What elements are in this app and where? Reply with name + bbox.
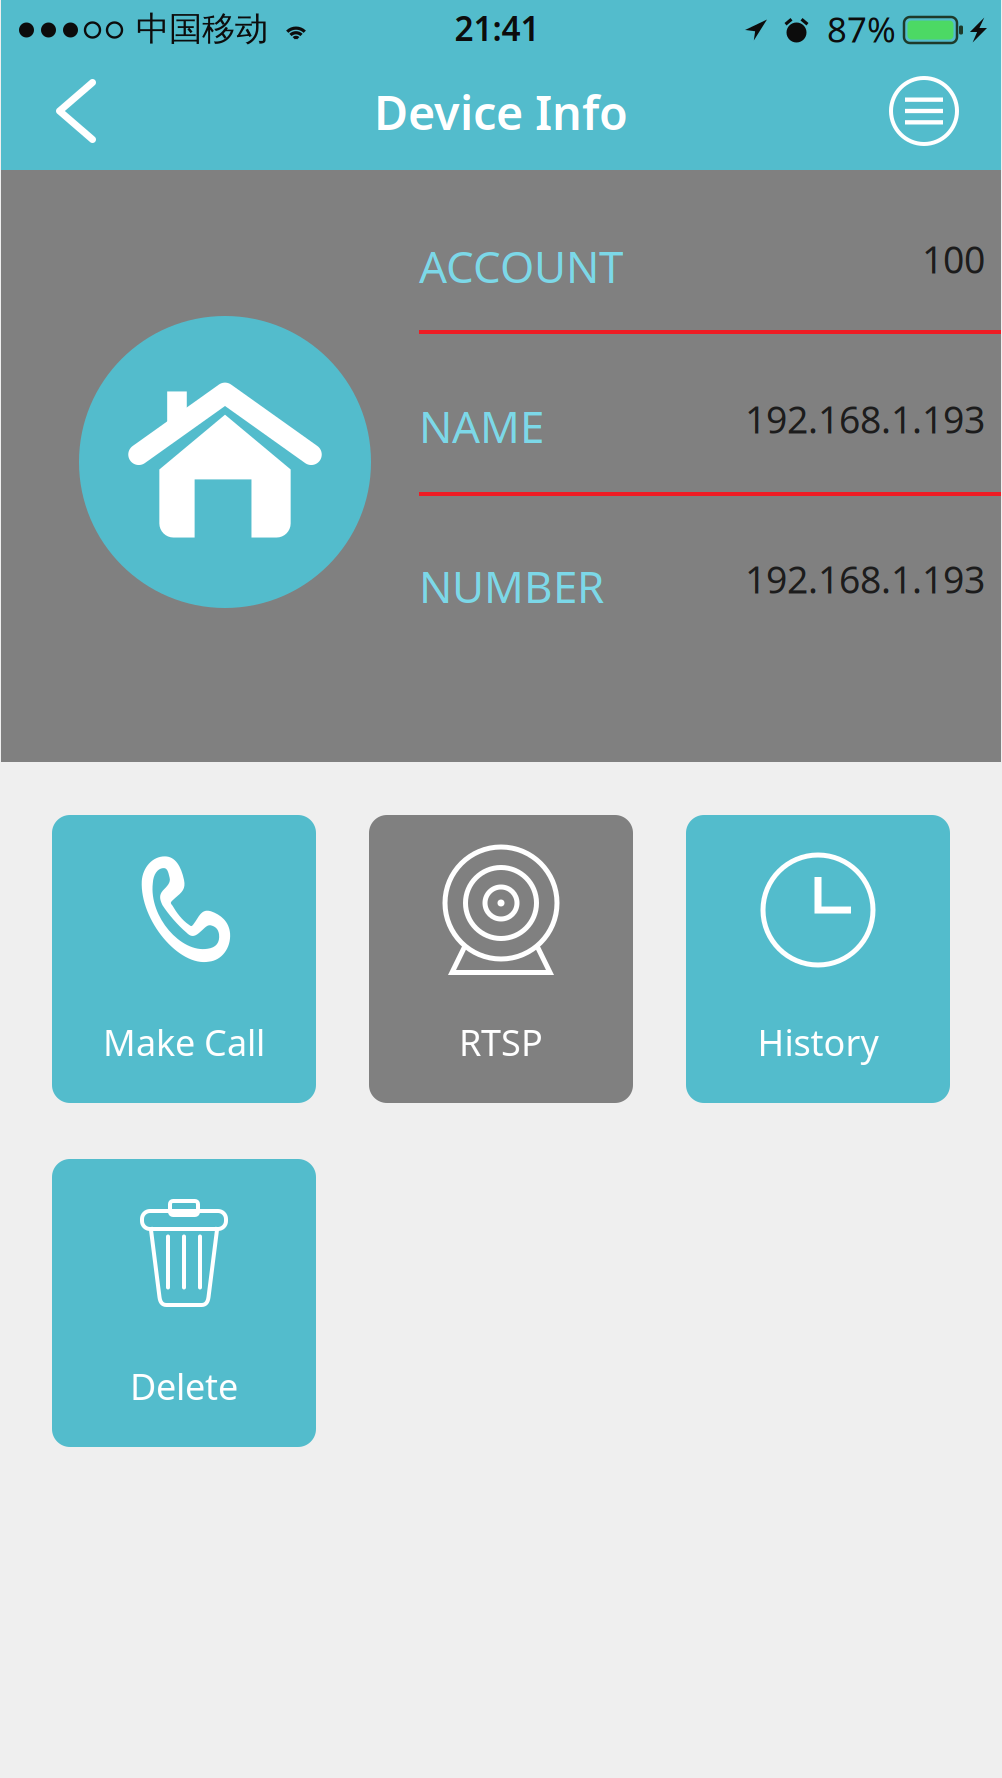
- button[interactable]: History: [686, 815, 950, 1103]
- staticText: NUMBER: [419, 557, 604, 615]
- staticText: 192.168.1.193: [745, 394, 985, 444]
- staticText: 192.168.1.193: [745, 554, 985, 604]
- staticText: 87%: [827, 6, 896, 52]
- staticText: Make Call: [103, 1018, 265, 1066]
- staticText: RTSP: [459, 1018, 543, 1066]
- button[interactable]: Back: [1, 60, 151, 170]
- staticText: 中国移动: [136, 8, 268, 49]
- staticText: History: [757, 1018, 878, 1066]
- staticText: 100: [922, 234, 985, 284]
- button[interactable]: RTSP: [369, 815, 633, 1103]
- staticText: ACCOUNT: [419, 237, 623, 295]
- staticText: Device Info: [374, 81, 628, 143]
- button[interactable]: Delete: [52, 1159, 316, 1447]
- staticText: NAME: [419, 397, 544, 455]
- staticText: 21:41: [454, 6, 539, 50]
- button[interactable]: Menu: [847, 60, 1001, 170]
- staticText: Delete: [130, 1362, 238, 1410]
- button[interactable]: Make Call: [52, 815, 316, 1103]
